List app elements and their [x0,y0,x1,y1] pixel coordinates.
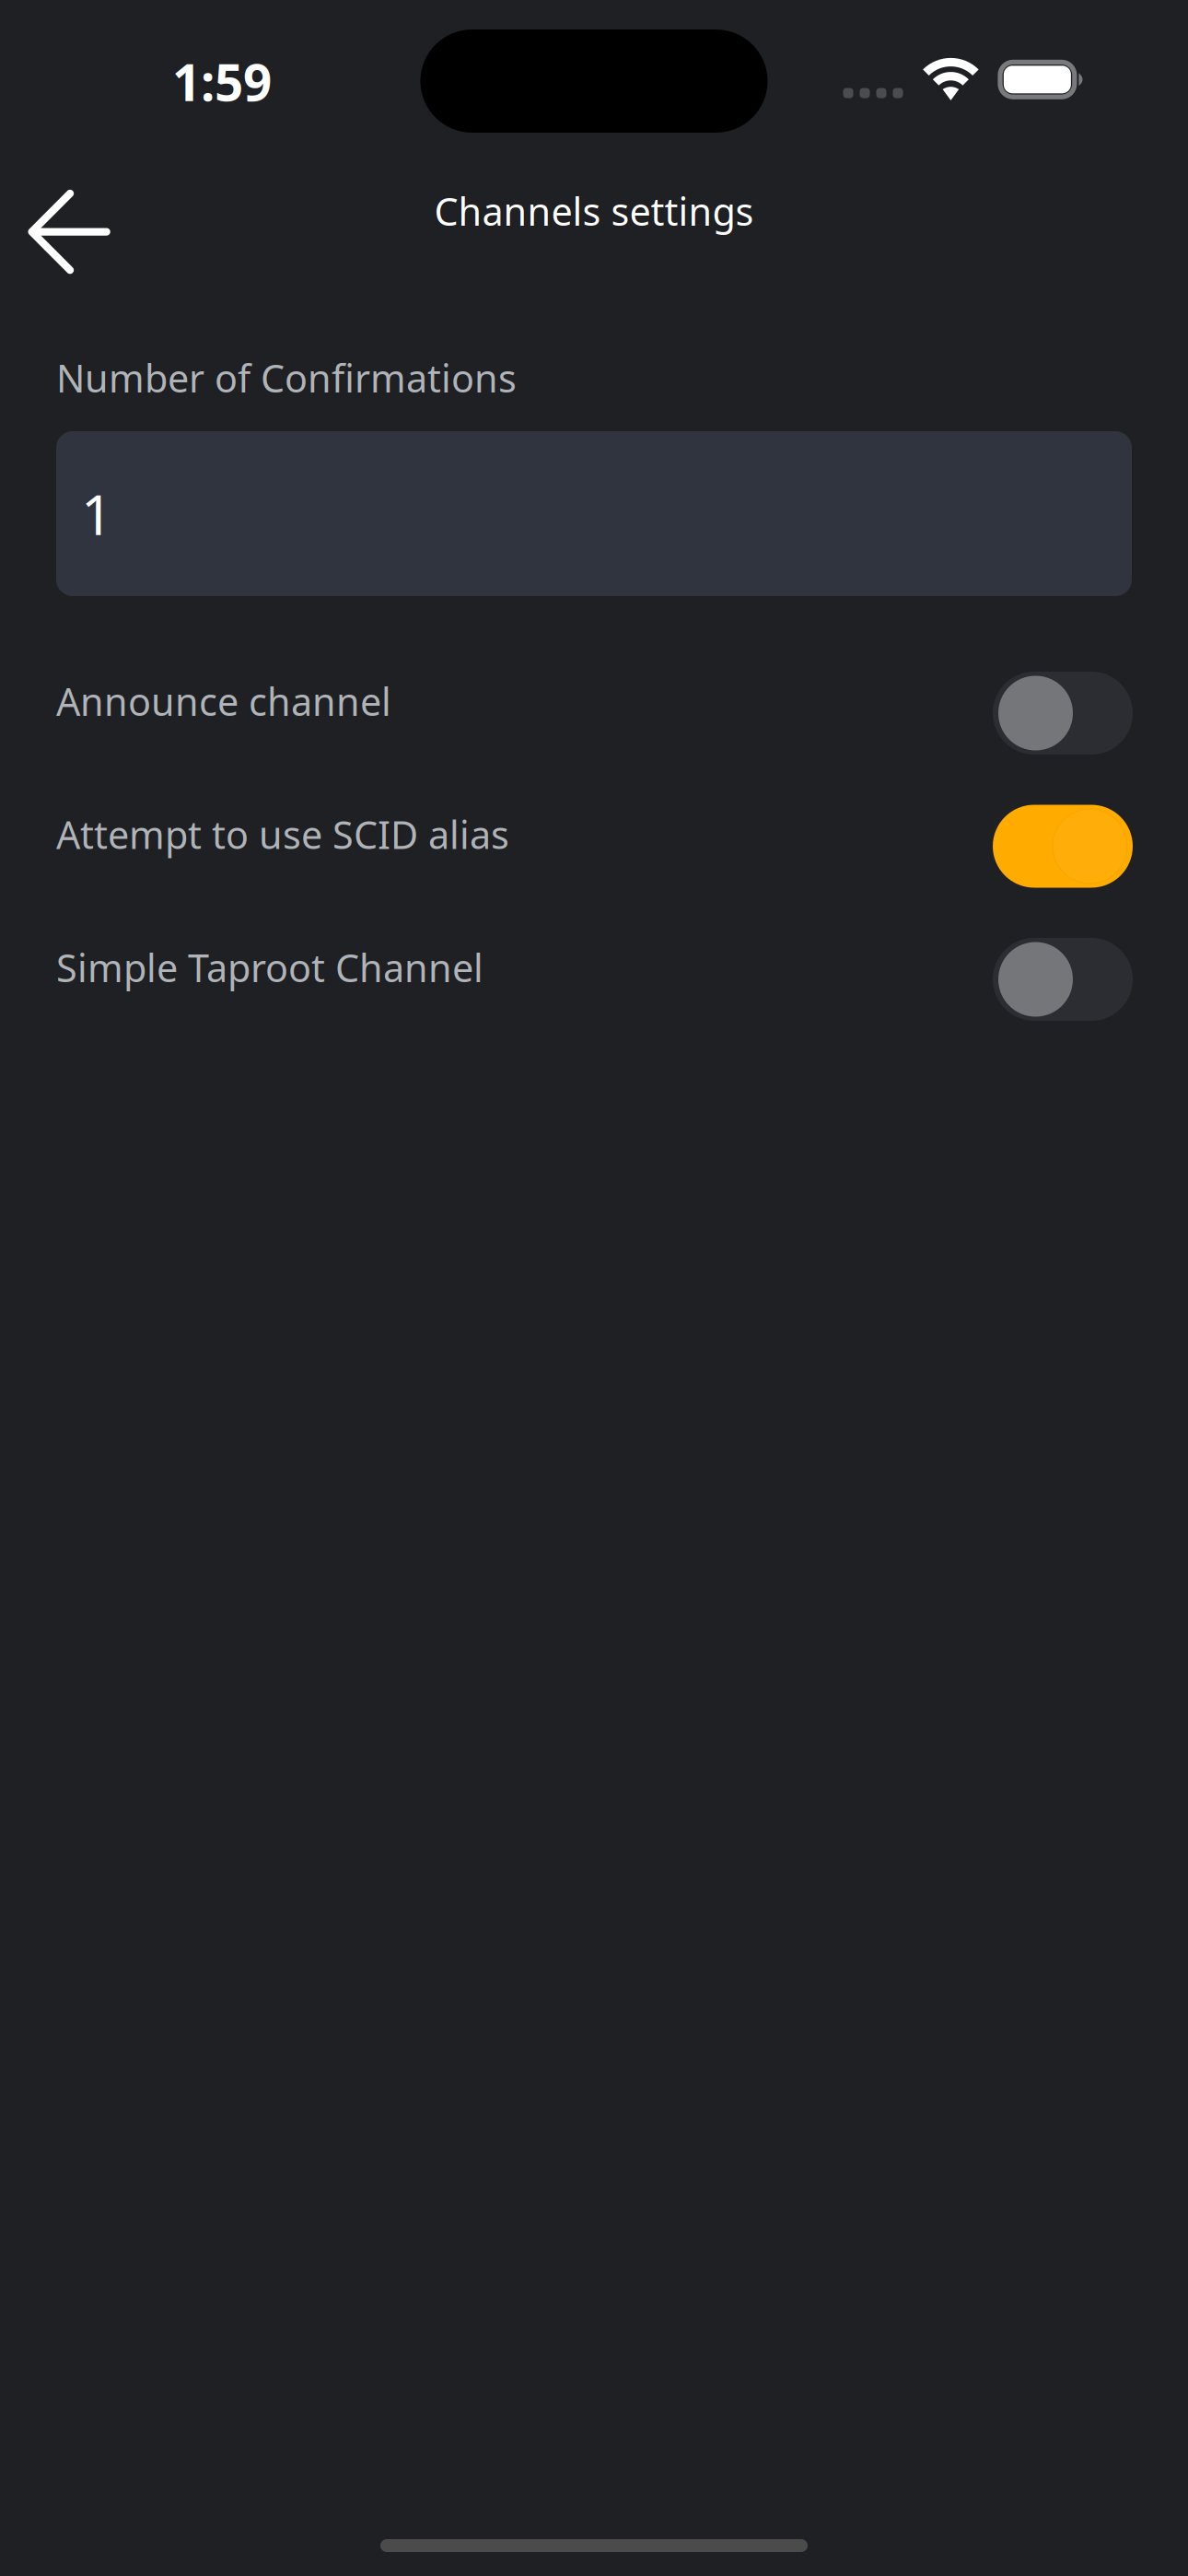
staticText: Announce channel [56,676,391,726]
button[interactable]: 1 [56,431,1132,596]
staticText: Number of Confirmations [56,352,517,403]
button[interactable]: Announce channel [0,649,1188,778]
button[interactable]: Attempt to use SCID alias [0,782,1188,911]
staticText: Channels settings [434,186,754,236]
button[interactable]: Back [0,163,146,301]
button[interactable]: Simple Taproot Channel [0,915,1188,1044]
staticText: Attempt to use SCID alias [56,809,509,860]
staticText: 1 [81,477,112,550]
staticText: 1:59 [172,48,272,115]
staticText: Simple Taproot Channel [56,942,483,993]
